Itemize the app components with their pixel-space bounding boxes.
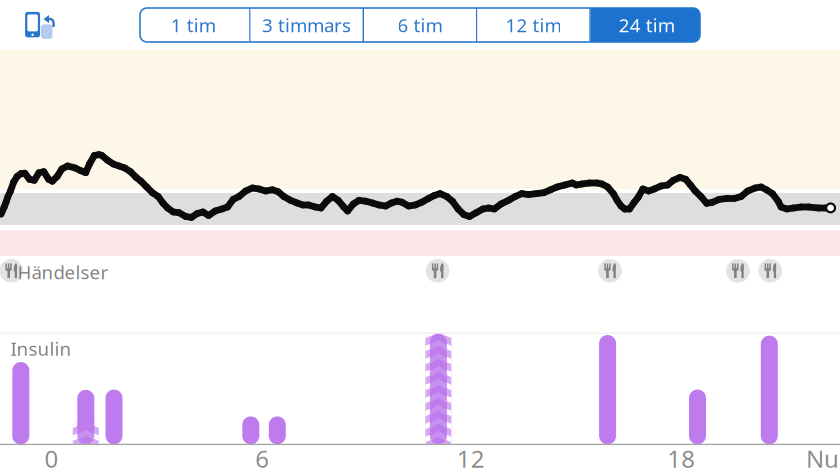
staticText: Händelser <box>17 260 108 284</box>
button[interactable]: 12 tim <box>477 8 589 42</box>
staticText: 1 tim <box>171 13 216 37</box>
staticText: 24 tim <box>619 13 675 37</box>
staticText: 0 <box>45 443 59 472</box>
staticText: Insulin <box>10 336 71 361</box>
staticText: 3 timmars <box>262 13 351 37</box>
staticText: 12 <box>457 443 485 472</box>
staticText: 12 tim <box>505 13 561 37</box>
staticText: 6 tim <box>397 13 442 37</box>
staticText: Nu <box>806 443 839 472</box>
staticText: 18 <box>667 443 695 472</box>
button[interactable]: 3 timmars <box>251 8 363 42</box>
button[interactable]: 1 tim <box>137 8 249 42</box>
staticText: 6 <box>255 443 269 472</box>
button[interactable]: 6 tim <box>364 8 476 42</box>
button[interactable]: 24 tim <box>591 8 703 42</box>
button[interactable]: Rotate device <box>21 5 61 45</box>
